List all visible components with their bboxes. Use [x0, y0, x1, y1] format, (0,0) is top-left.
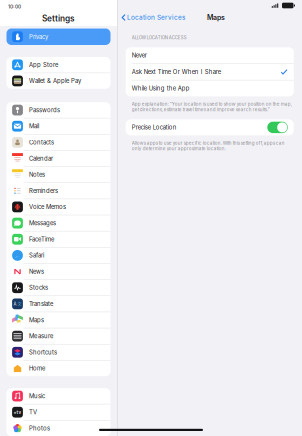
- staticText: Location Services: [127, 14, 185, 21]
- staticText: Settings: [42, 13, 75, 23]
- button[interactable]: tv: [6, 404, 110, 420]
- staticText: Contacts: [29, 139, 54, 146]
- staticText: News: [29, 268, 44, 275]
- button[interactable]: Home: [6, 361, 110, 376]
- staticText: Allows apps to use your specific locatio…: [132, 140, 285, 151]
- staticText: TV: [29, 409, 37, 416]
- button[interactable]: Calendar: [6, 151, 110, 166]
- staticText: App Store: [29, 61, 58, 68]
- button[interactable]: Maps: [6, 312, 110, 328]
- staticText: Maps: [29, 316, 44, 324]
- button[interactable]: Privacy: [6, 28, 110, 45]
- button[interactable]: App Store: [6, 57, 110, 73]
- button[interactable]: A: [6, 296, 110, 312]
- staticText: Measure: [29, 333, 53, 340]
- button[interactable]: Shortcuts: [6, 344, 110, 360]
- staticText: Ask Next Time Or When I Share: [132, 68, 221, 75]
- button[interactable]: Ask Next Time Or When I Share: [126, 64, 294, 80]
- staticText: Safari: [29, 252, 44, 259]
- button[interactable]: Precise Location: [126, 119, 294, 135]
- button[interactable]: Location Services: [118, 11, 185, 24]
- button[interactable]: Mail: [6, 118, 110, 134]
- button[interactable]: Wallet & Apple Pay: [6, 73, 110, 89]
- button[interactable]: Passwords: [6, 102, 110, 118]
- staticText: ALLOW LOCATION ACCESS: [132, 35, 187, 40]
- staticText: Music: [29, 392, 45, 400]
- button[interactable]: While Using the App: [126, 80, 294, 96]
- staticText: Maps: [207, 13, 225, 22]
- button[interactable]: Voice Memos: [6, 199, 110, 215]
- button[interactable]: Music: [6, 388, 110, 404]
- staticText: Precise Location: [132, 124, 177, 131]
- button[interactable]: News: [6, 264, 110, 279]
- button[interactable]: Stocks: [6, 280, 110, 295]
- staticText: Translate: [29, 300, 53, 307]
- staticText: tv: [13, 409, 21, 415]
- staticText: Privacy: [29, 33, 48, 40]
- staticText: Shortcuts: [29, 349, 57, 356]
- staticText: Reminders: [29, 187, 58, 194]
- staticText: Photos: [29, 425, 50, 432]
- button[interactable]: Never: [126, 47, 294, 63]
- staticText: Never: [132, 52, 147, 59]
- staticText: Notes: [29, 171, 45, 178]
- button[interactable]: Photos: [6, 421, 110, 436]
- button[interactable]: FaceTime: [6, 231, 110, 247]
- staticText: Stocks: [29, 284, 48, 291]
- button[interactable]: Safari: [6, 248, 110, 263]
- staticText: Home: [29, 365, 45, 372]
- staticText: While Using the App: [132, 85, 190, 92]
- button[interactable]: Reminders: [6, 183, 110, 199]
- button[interactable]: Notes: [6, 167, 110, 182]
- staticText: A: [14, 301, 17, 306]
- staticText: Voice Memos: [29, 203, 66, 211]
- button[interactable]: Measure: [6, 328, 110, 344]
- staticText: 文: [17, 301, 21, 307]
- button[interactable]: Contacts: [6, 135, 110, 150]
- staticText: Wallet & Apple Pay: [29, 77, 81, 85]
- staticText: 10:00: [8, 4, 21, 10]
- staticText: Calendar: [29, 155, 53, 162]
- button[interactable]: Messages: [6, 215, 110, 231]
- staticText: Messages: [29, 219, 56, 227]
- staticText: Passwords: [29, 106, 60, 114]
- staticText: FaceTime: [29, 236, 54, 243]
- staticText: Mail: [29, 123, 39, 130]
- staticText: App explanation: “Your location is used …: [132, 101, 292, 112]
